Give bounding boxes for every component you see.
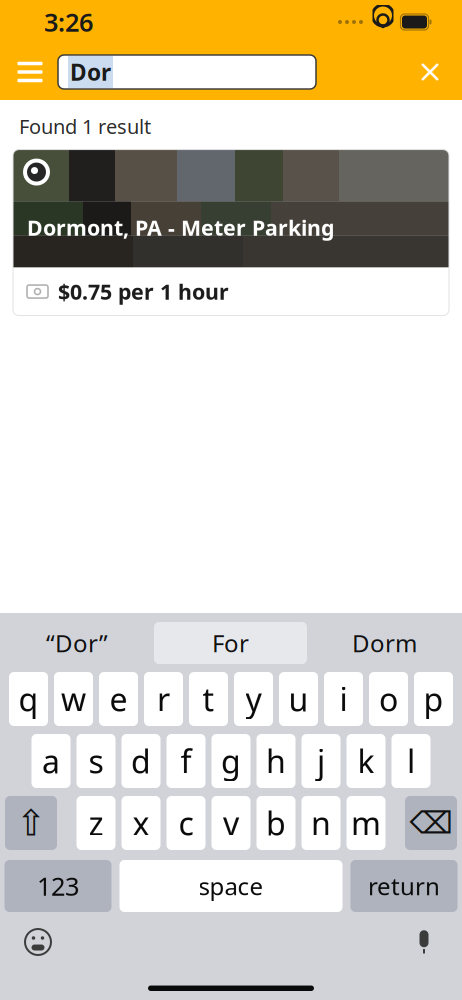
staticText: e bbox=[109, 678, 127, 720]
staticText: t bbox=[202, 678, 214, 720]
button[interactable]: Dor bbox=[58, 55, 316, 89]
button[interactable]: n bbox=[301, 796, 340, 850]
button[interactable]: h bbox=[256, 734, 295, 788]
button[interactable]: t bbox=[189, 672, 228, 726]
staticText: 3:26 bbox=[44, 5, 93, 39]
button[interactable]: z bbox=[76, 796, 115, 850]
staticText: space bbox=[198, 870, 263, 902]
staticText: c bbox=[178, 802, 193, 844]
button[interactable]: y bbox=[234, 672, 273, 726]
staticText: x bbox=[132, 802, 149, 844]
staticText: m bbox=[351, 802, 381, 844]
button[interactable]: k bbox=[346, 734, 385, 788]
staticText: o bbox=[379, 678, 398, 720]
staticText: g bbox=[221, 740, 241, 782]
button[interactable]: For bbox=[154, 622, 307, 664]
staticText: k bbox=[357, 740, 374, 782]
staticText: Dorm bbox=[352, 627, 417, 659]
button[interactable]: s bbox=[76, 734, 115, 788]
staticText: s bbox=[88, 740, 103, 782]
button[interactable]: Dormont, PA - Meter Parking bbox=[13, 150, 449, 316]
button[interactable]: x bbox=[121, 796, 160, 850]
staticText: d bbox=[131, 740, 151, 782]
staticText: “Dor” bbox=[46, 627, 108, 659]
staticText: n bbox=[311, 802, 331, 844]
staticText: h bbox=[266, 740, 286, 782]
staticText: 123 bbox=[37, 869, 79, 903]
staticText: $0.75 per 1 hour bbox=[58, 277, 229, 306]
button[interactable]: c bbox=[166, 796, 205, 850]
staticText: i bbox=[339, 678, 347, 720]
staticText: u bbox=[288, 678, 308, 720]
staticText: For bbox=[212, 627, 249, 659]
staticText: j bbox=[317, 740, 325, 782]
staticText: ⇧ bbox=[16, 803, 46, 843]
staticText: z bbox=[88, 802, 103, 844]
button[interactable]: m bbox=[346, 796, 385, 850]
button[interactable]: Shift bbox=[5, 796, 57, 850]
button[interactable]: j bbox=[301, 734, 340, 788]
button[interactable]: Menu bbox=[2, 44, 58, 100]
staticText: b bbox=[266, 802, 286, 844]
button[interactable]: p bbox=[414, 672, 453, 726]
staticText: Found 1 result bbox=[19, 113, 151, 140]
staticText: w bbox=[61, 678, 86, 720]
button[interactable]: Dictation bbox=[400, 918, 448, 966]
staticText: p bbox=[423, 678, 443, 720]
staticText: l bbox=[407, 740, 415, 782]
button[interactable]: i bbox=[324, 672, 363, 726]
button[interactable]: 123 bbox=[4, 860, 111, 912]
button[interactable]: return bbox=[350, 860, 457, 912]
button[interactable]: d bbox=[121, 734, 160, 788]
button[interactable]: q bbox=[9, 672, 48, 726]
button[interactable]: space bbox=[119, 860, 342, 912]
button[interactable]: g bbox=[211, 734, 250, 788]
button[interactable]: Dorm bbox=[307, 622, 462, 664]
staticText: y bbox=[245, 678, 261, 720]
staticText: Dor bbox=[70, 57, 111, 87]
button[interactable]: Close bbox=[406, 48, 454, 96]
button[interactable]: f bbox=[166, 734, 205, 788]
staticText: r bbox=[157, 678, 170, 720]
button[interactable]: “Dor” bbox=[0, 622, 154, 664]
button[interactable]: v bbox=[211, 796, 250, 850]
button[interactable]: r bbox=[144, 672, 183, 726]
button[interactable]: e bbox=[99, 672, 138, 726]
staticText: q bbox=[18, 678, 38, 720]
button[interactable]: w bbox=[54, 672, 93, 726]
button[interactable]: o bbox=[369, 672, 408, 726]
staticText: v bbox=[223, 802, 239, 844]
button[interactable]: u bbox=[279, 672, 318, 726]
staticText: Dormont, PA - Meter Parking bbox=[27, 213, 334, 241]
button[interactable]: Emoji bbox=[14, 918, 62, 966]
button[interactable]: Delete bbox=[405, 796, 457, 850]
staticText: a bbox=[42, 740, 60, 782]
button[interactable]: l bbox=[391, 734, 430, 788]
button[interactable]: b bbox=[256, 796, 295, 850]
button[interactable]: a bbox=[31, 734, 70, 788]
staticText: f bbox=[180, 740, 191, 782]
staticText: ⌫ bbox=[409, 806, 452, 840]
staticText: return bbox=[368, 870, 440, 902]
